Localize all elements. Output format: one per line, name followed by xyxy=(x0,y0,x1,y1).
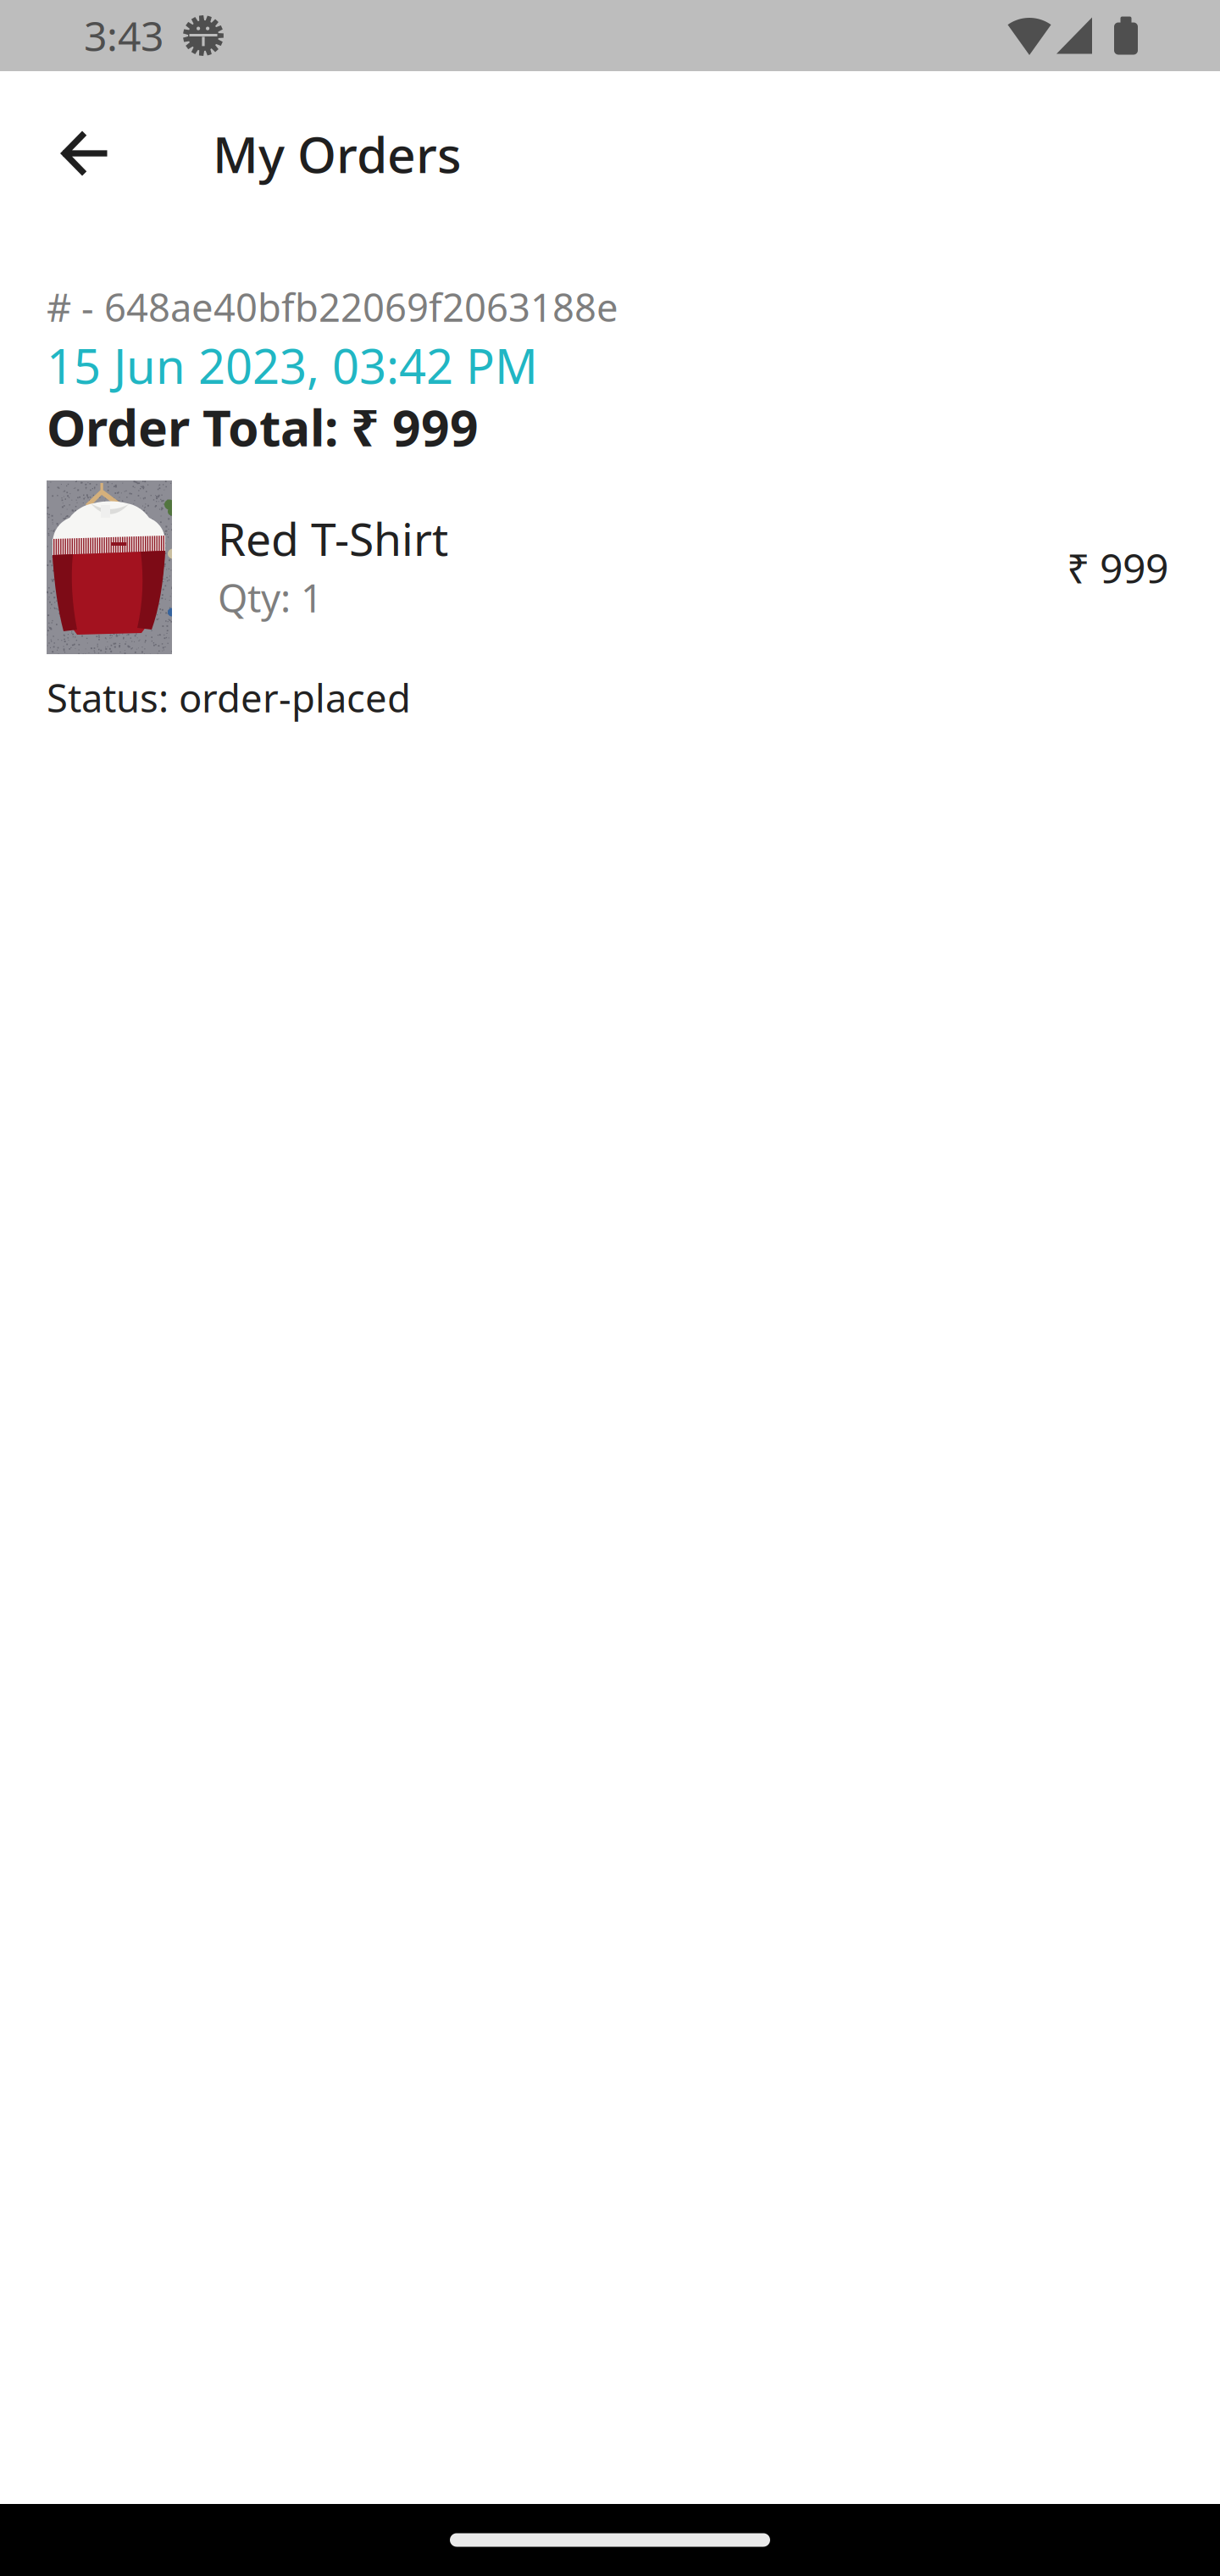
button[interactable]: # - 648ae40bfb22069f2063188e xyxy=(47,281,1168,731)
staticText: Qty: 1 xyxy=(218,572,323,623)
staticText: Status: order-placed xyxy=(47,672,411,723)
staticText: ₹ 999 xyxy=(1067,541,1168,595)
staticText: # - 648ae40bfb22069f2063188e xyxy=(47,281,618,332)
button[interactable]: Back xyxy=(36,106,131,201)
staticText: Order Total: ₹ 999 xyxy=(47,394,479,460)
staticText: My Orders xyxy=(213,121,462,187)
staticText: Red T-Shirt xyxy=(218,508,448,568)
staticText: 3:43 xyxy=(84,9,164,63)
staticText: 15 Jun 2023, 03:42 PM xyxy=(47,334,538,397)
